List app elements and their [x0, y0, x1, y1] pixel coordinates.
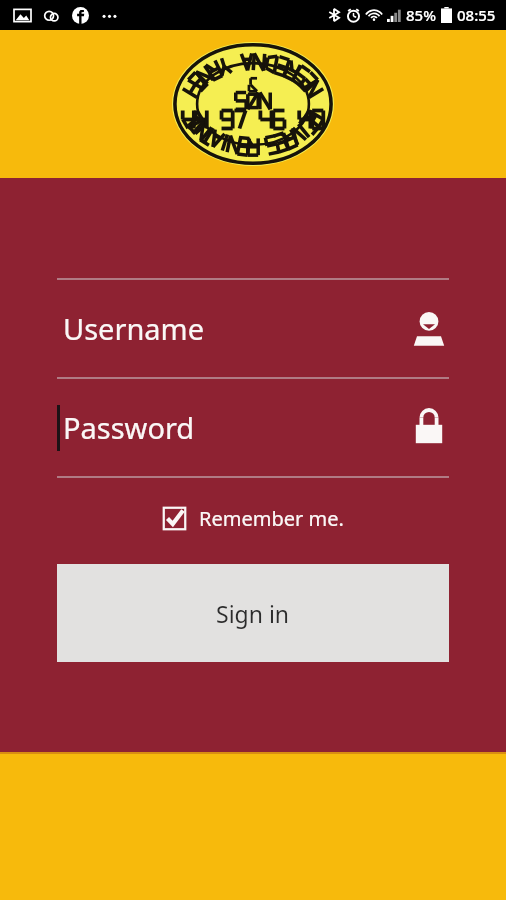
staticText: 08:55: [457, 5, 496, 25]
staticText: Remember me.: [199, 505, 344, 532]
staticText: Sign in: [216, 598, 290, 629]
staticText: 85%: [406, 5, 436, 25]
button[interactable]: Username: [57, 280, 449, 377]
button[interactable]: Sign in: [57, 564, 449, 662]
staticText: Password: [63, 408, 195, 447]
staticText: Username: [63, 309, 205, 348]
button[interactable]: Remember me.: [158, 501, 348, 536]
button[interactable]: Password: [57, 379, 449, 476]
